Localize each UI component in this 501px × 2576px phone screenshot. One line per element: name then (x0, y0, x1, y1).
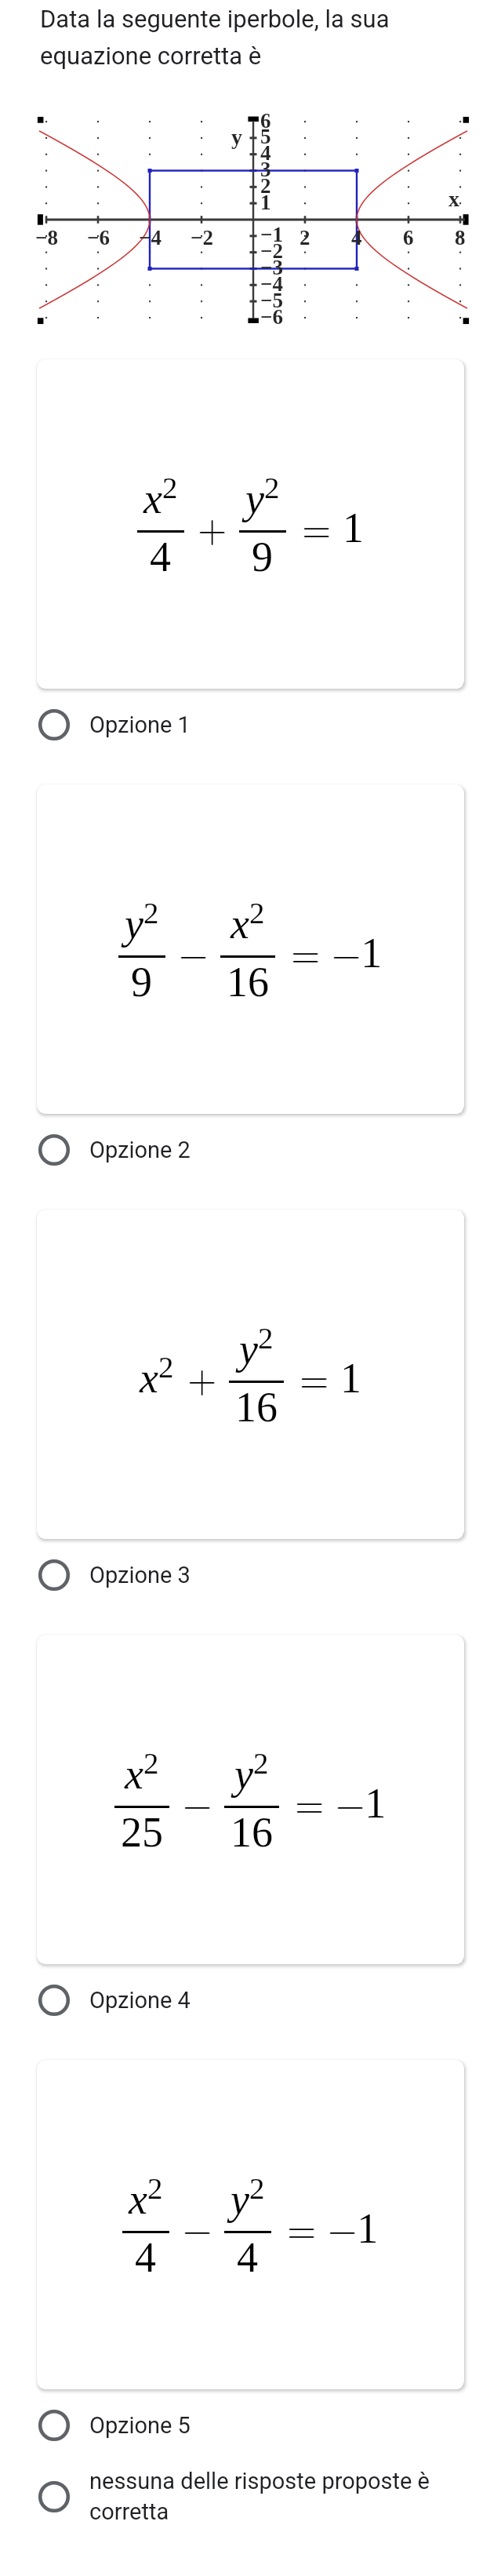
button[interactable]: Opzione 2 (0, 1133, 501, 1166)
button[interactable]: x2 (37, 1635, 464, 1964)
staticText: 25 (121, 1809, 163, 1856)
staticText: 2 (300, 226, 310, 249)
staticText: x2 (129, 2171, 163, 2223)
staticText: Opzione 3 (89, 1562, 191, 1588)
staticText: −3 (260, 256, 283, 279)
staticText: 1 (343, 504, 364, 551)
staticText: x2 (231, 896, 265, 948)
staticText: y2 (125, 896, 159, 948)
staticText: = (300, 1350, 329, 1403)
staticText: y2 (231, 2171, 265, 2223)
staticText: x (448, 187, 459, 211)
staticText: y2 (239, 1321, 274, 1373)
staticText: y (231, 125, 242, 149)
staticText: nessuna delle risposte proposte è corret… (89, 2468, 462, 2525)
staticText: − (183, 2200, 212, 2254)
staticText: 3 (260, 158, 271, 181)
staticText: −2 (260, 239, 283, 263)
staticText: 8 (455, 226, 466, 249)
button[interactable]: nessuna delle risposte proposte è corret… (0, 2468, 501, 2525)
staticText: 16 (231, 1809, 273, 1856)
staticText: Opzione 5 (89, 2412, 191, 2439)
staticText: −1 (336, 1775, 387, 1828)
staticText: = (287, 2200, 317, 2254)
staticText: − (179, 925, 209, 978)
staticText: + (198, 500, 227, 553)
button[interactable]: y2 (37, 784, 464, 1114)
staticText: 9 (131, 959, 152, 1006)
button[interactable]: Opzione 5 (0, 2409, 501, 2442)
staticText: 2 (260, 174, 271, 198)
button[interactable]: x2 (37, 359, 464, 689)
staticText: = (295, 1775, 325, 1828)
staticText: Opzione 1 (89, 711, 191, 738)
staticText: − (183, 1775, 212, 1828)
staticText: = (291, 925, 321, 978)
staticText: −1 (332, 925, 383, 978)
button[interactable]: Opzione 3 (0, 1559, 501, 1592)
staticText: −6 (260, 305, 283, 329)
staticText: 1 (340, 1355, 361, 1402)
staticText: + (187, 1350, 217, 1403)
staticText: −4 (139, 226, 162, 249)
staticText: x2 (140, 1350, 174, 1402)
staticText: 9 (252, 533, 273, 580)
staticText: x2 (125, 1746, 159, 1798)
staticText: 6 (260, 109, 271, 133)
staticText: 4 (237, 2234, 258, 2281)
staticText: 6 (403, 226, 414, 249)
staticText: Opzione 4 (89, 1987, 191, 2014)
button[interactable]: Opzione 1 (0, 708, 501, 741)
staticText: 16 (235, 1384, 278, 1431)
staticText: = (302, 500, 332, 553)
staticText: x2 (143, 471, 178, 522)
staticText: −2 (191, 226, 213, 249)
staticText: 16 (227, 959, 269, 1006)
staticText: 4 (135, 2234, 156, 2281)
staticText: y2 (234, 1746, 269, 1798)
staticText: −5 (260, 289, 283, 312)
staticText: 5 (260, 125, 271, 148)
staticText: −4 (260, 272, 283, 296)
staticText: 1 (260, 191, 271, 214)
staticText: −1 (328, 2200, 379, 2254)
button[interactable]: x2 (37, 2060, 464, 2389)
staticText: 4 (351, 226, 362, 249)
staticText: −1 (260, 223, 283, 246)
staticText: −8 (35, 226, 58, 249)
staticText: 4 (260, 141, 271, 165)
staticText: Data la seguente iperbole, la sua equazi… (40, 5, 446, 71)
staticText: 4 (150, 533, 171, 580)
staticText: y2 (245, 471, 280, 522)
staticText: Opzione 2 (89, 1137, 191, 1163)
staticText: −6 (87, 226, 110, 249)
button[interactable]: Opzione 4 (0, 1984, 501, 2017)
button[interactable]: x2 (37, 1210, 464, 1539)
